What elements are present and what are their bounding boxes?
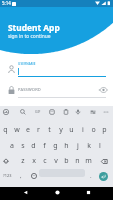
staticText: sign in to continue	[8, 33, 51, 40]
staticText: USERNAME	[18, 62, 36, 66]
button[interactable]: q	[0, 122, 11, 137]
staticText: j	[77, 141, 79, 151]
button[interactable]: z	[17, 153, 28, 168]
button[interactable]: Recent apps	[81, 186, 95, 199]
staticText: k	[87, 141, 91, 151]
button[interactable]: Settings	[87, 106, 98, 117]
button[interactable]: Search	[17, 106, 28, 117]
button[interactable]: u	[66, 122, 77, 137]
button[interactable]: Clipboard	[60, 106, 71, 117]
button[interactable]: .	[86, 168, 96, 183]
button[interactable]: g	[50, 138, 61, 153]
button[interactable]: Enter	[99, 172, 108, 181]
button[interactable]: e	[22, 122, 33, 137]
button[interactable]: t	[44, 122, 55, 137]
button[interactable]: Home	[50, 186, 64, 199]
button[interactable]: f	[39, 138, 50, 153]
button[interactable]: b	[61, 153, 72, 168]
button[interactable]: p	[99, 122, 110, 137]
staticText: f	[43, 141, 46, 151]
staticText: p	[102, 125, 107, 135]
button[interactable]: k	[83, 138, 94, 153]
staticText: ?123	[3, 173, 12, 178]
button[interactable]: o	[88, 122, 99, 137]
button[interactable]: r	[33, 122, 44, 137]
staticText: 5:14	[2, 0, 11, 6]
staticText: r	[37, 125, 40, 135]
staticText: Student App	[8, 22, 60, 33]
button[interactable]: x	[28, 153, 39, 168]
button[interactable]: GIF	[32, 106, 44, 117]
button[interactable]: y	[55, 122, 66, 137]
button[interactable]: m	[83, 153, 94, 168]
staticText: l	[99, 141, 101, 151]
staticText: PASSWORD	[18, 87, 41, 92]
staticText: a	[10, 141, 14, 151]
button[interactable]: l	[94, 138, 105, 153]
button[interactable]: Emoji	[28, 168, 39, 183]
button[interactable]: c	[39, 153, 50, 168]
staticText: w	[14, 125, 20, 135]
staticText: v	[54, 156, 58, 166]
button[interactable]: ,	[16, 168, 26, 183]
button[interactable]: Voice input	[72, 106, 83, 117]
staticText: y	[59, 125, 63, 135]
staticText: u	[69, 125, 74, 135]
staticText: x	[32, 156, 36, 166]
button[interactable]: d	[28, 138, 39, 153]
button[interactable]: More options	[100, 106, 111, 117]
staticText: GIF	[35, 109, 41, 114]
button[interactable]: v	[50, 153, 61, 168]
staticText: g	[53, 141, 58, 151]
button[interactable]: Back	[18, 186, 32, 199]
staticText: .	[90, 172, 92, 180]
button[interactable]: Shift	[0, 153, 12, 168]
staticText: m	[85, 156, 92, 166]
button[interactable]: ?123	[0, 168, 15, 183]
staticText: z	[21, 156, 25, 166]
staticText: i	[82, 125, 84, 135]
button[interactable]: s	[17, 138, 28, 153]
button[interactable]	[18, 67, 106, 76]
staticText: q	[3, 125, 8, 135]
staticText: ,	[20, 172, 22, 180]
staticText: n	[75, 156, 80, 166]
staticText: d	[31, 141, 36, 151]
button[interactable]: a	[6, 138, 17, 153]
staticText: e	[26, 125, 30, 135]
button[interactable]: j	[72, 138, 83, 153]
button[interactable]: n	[72, 153, 83, 168]
staticText: t	[48, 125, 51, 135]
button[interactable]: i	[77, 122, 88, 137]
staticText: s	[21, 141, 25, 151]
button[interactable]: Backspace	[98, 154, 110, 169]
staticText: c	[43, 156, 47, 166]
button[interactable]: h	[61, 138, 72, 153]
button[interactable]: Show password	[98, 85, 109, 95]
button[interactable]: Stickers	[46, 106, 57, 117]
staticText: o	[91, 125, 96, 135]
staticText: h	[64, 141, 69, 151]
staticText: b	[64, 156, 69, 166]
button[interactable]: Gboard	[0, 106, 11, 117]
button[interactable]: w	[11, 122, 22, 137]
